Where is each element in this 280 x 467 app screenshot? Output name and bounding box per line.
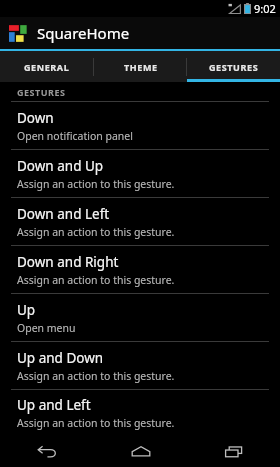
- staticText: Assign an action to this gesture.: [17, 177, 175, 191]
- staticText: GENERAL: [24, 61, 70, 73]
- staticText: Assign an action to this gesture.: [17, 369, 175, 383]
- button[interactable]: GESTURES: [187, 51, 280, 82]
- button[interactable]: Down: [0, 102, 280, 149]
- staticText: Up: [17, 301, 36, 319]
- staticText: Open menu: [17, 321, 76, 335]
- staticText: GESTURES: [17, 86, 66, 98]
- staticText: Down: [17, 109, 54, 127]
- button[interactable]: Up: [0, 294, 280, 341]
- staticText: Up and Left: [17, 396, 91, 414]
- button[interactable]: Up and Left: [0, 390, 280, 436]
- button[interactable]: GENERAL: [0, 51, 94, 82]
- button[interactable]: SquareHome: [0, 17, 280, 49]
- button[interactable]: THEME: [94, 51, 187, 82]
- staticText: GESTURES: [209, 61, 259, 73]
- staticText: Open notification panel: [17, 129, 133, 143]
- button[interactable]: Down and Up: [0, 150, 280, 197]
- button[interactable]: Home: [94, 436, 187, 467]
- staticText: SquareHome: [37, 23, 130, 43]
- button[interactable]: Down and Right: [0, 246, 280, 293]
- staticText: Assign an action to this gesture.: [17, 225, 175, 239]
- staticText: Assign an action to this gesture.: [17, 416, 175, 430]
- button[interactable]: Up and Down: [0, 342, 280, 389]
- staticText: Down and Up: [17, 157, 104, 175]
- staticText: Up and Down: [17, 349, 104, 367]
- staticText: 9:02: [254, 1, 276, 16]
- staticText: Assign an action to this gesture.: [17, 273, 175, 287]
- button[interactable]: Recent apps: [187, 436, 280, 467]
- staticText: Down and Left: [17, 205, 110, 223]
- staticText: THEME: [124, 61, 158, 73]
- staticText: Down and Right: [17, 253, 119, 271]
- button[interactable]: Back: [0, 436, 94, 467]
- button[interactable]: Down and Left: [0, 198, 280, 245]
